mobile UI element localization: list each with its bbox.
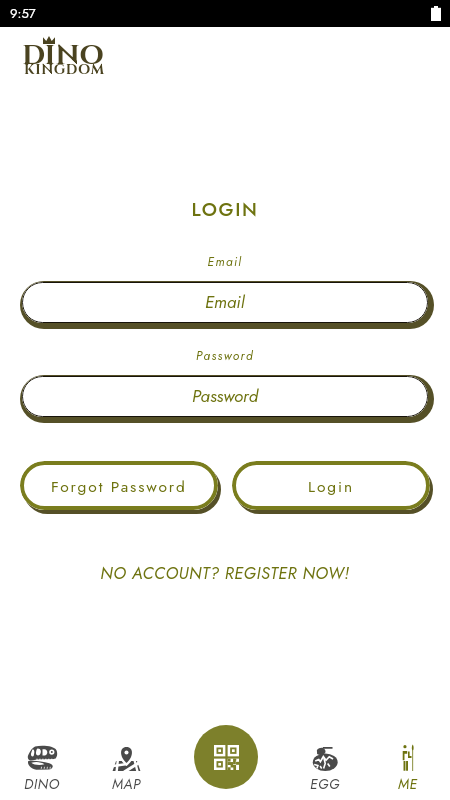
staticText: 9:57 xyxy=(10,4,36,23)
button[interactable]: DINO xyxy=(2,744,82,794)
staticText: Login xyxy=(308,475,354,497)
staticText: Email xyxy=(205,290,245,315)
staticText: Email xyxy=(0,253,450,270)
staticText: ME xyxy=(398,774,418,794)
staticText: KINGDOM xyxy=(24,60,105,79)
staticText: DINO xyxy=(24,774,60,794)
staticText: MAP xyxy=(112,774,141,794)
staticText: Password xyxy=(0,347,450,364)
staticText: LOGIN xyxy=(0,196,450,223)
staticText: DINO xyxy=(22,37,104,75)
button[interactable]: MAP xyxy=(86,744,166,794)
button[interactable]: Login xyxy=(232,461,430,510)
button[interactable]: NO ACCOUNT? REGISTER NOW! xyxy=(0,561,450,585)
button[interactable]: ME xyxy=(368,744,448,794)
button[interactable]: Password xyxy=(22,376,428,417)
button[interactable]: Scan QR code xyxy=(194,725,258,789)
staticText: Password xyxy=(192,384,259,409)
button[interactable]: Email xyxy=(22,282,428,323)
button[interactable]: Forgot Password xyxy=(20,461,218,510)
staticText: EGG xyxy=(310,774,341,794)
button[interactable]: EGG xyxy=(285,744,365,794)
staticText: Forgot Password xyxy=(51,475,187,497)
